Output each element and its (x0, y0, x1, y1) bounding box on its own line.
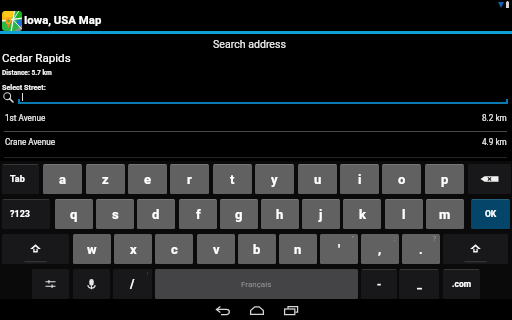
staticText: p (441, 172, 449, 187)
button[interactable]: _ (399, 269, 439, 299)
staticText: x (130, 242, 137, 257)
button[interactable]: Voice input (73, 269, 110, 299)
button[interactable]: a (43, 164, 82, 194)
button[interactable]: q (55, 199, 93, 229)
staticText: 4.9 km (482, 137, 507, 147)
button[interactable]: . (402, 234, 440, 264)
button[interactable]: x (114, 234, 152, 264)
staticText: v (213, 242, 220, 257)
staticText: n (294, 242, 302, 257)
button[interactable]: e (128, 164, 167, 194)
staticText: . (419, 242, 423, 257)
staticText: ' (338, 242, 341, 257)
staticText: Search address (213, 38, 286, 50)
staticText: Tab (10, 174, 25, 185)
button[interactable]: m (426, 199, 464, 229)
button[interactable]: Shift (443, 234, 508, 264)
staticText: Select Street: (2, 83, 46, 91)
staticText: / (130, 277, 135, 291)
button[interactable]: Home (240, 299, 274, 320)
button[interactable]: u (298, 164, 337, 194)
staticText: ?123 (10, 209, 30, 220)
button[interactable]: / (113, 269, 152, 299)
button[interactable]: Space (155, 269, 358, 299)
staticText: " (352, 235, 355, 243)
staticText: h (276, 207, 284, 222)
staticText: : (394, 235, 396, 243)
button[interactable]: n (279, 234, 317, 264)
staticText: .com (452, 279, 472, 289)
staticText: w (87, 242, 97, 257)
button[interactable]: Backspace (468, 164, 511, 194)
staticText: Français (241, 280, 272, 289)
staticText: a (59, 172, 66, 187)
button[interactable]: i (340, 164, 379, 194)
staticText: _ (417, 278, 422, 291)
button[interactable]: .com (443, 269, 480, 299)
staticText: t (230, 172, 235, 187)
staticText: Distance: 5.7 km (2, 69, 52, 77)
staticText: , (378, 242, 382, 257)
button[interactable]: OK (471, 199, 510, 229)
staticText: k (359, 207, 366, 222)
staticText: Crane Avenue (5, 137, 56, 147)
staticText: e (144, 172, 152, 187)
staticText: l (402, 207, 406, 222)
button[interactable]: z (86, 164, 125, 194)
staticText: g (235, 207, 243, 222)
button[interactable]: ?123 (2, 199, 50, 229)
staticText: - (377, 278, 382, 291)
button[interactable]: f (179, 199, 217, 229)
staticText: ? (433, 235, 437, 243)
button[interactable]: , (361, 234, 399, 264)
staticText: Iowa, USA Map (24, 13, 102, 26)
button[interactable]: Settings (32, 269, 69, 299)
button[interactable]: w (73, 234, 111, 264)
staticText: r (187, 172, 192, 187)
button[interactable]: g (220, 199, 258, 229)
staticText: 1st Avenue (5, 113, 46, 123)
button[interactable]: y (255, 164, 294, 194)
button[interactable]: 1st Avenue (0, 106, 512, 129)
staticText: b (253, 242, 261, 257)
button[interactable]: c (155, 234, 193, 264)
staticText: u (314, 172, 322, 187)
staticText: z (102, 172, 109, 187)
staticText: 8.2 km (482, 113, 507, 123)
button[interactable]: v (197, 234, 235, 264)
button[interactable]: j (302, 199, 340, 229)
button[interactable]: s (96, 199, 134, 229)
button[interactable]: Tab (2, 164, 39, 194)
staticText: : (147, 269, 149, 276)
staticText: c (171, 242, 178, 257)
staticText: s (112, 207, 119, 222)
button[interactable]: Shift (2, 234, 69, 264)
button[interactable]: Recent apps (274, 299, 308, 320)
staticText: d (152, 207, 160, 222)
staticText: i (358, 172, 362, 187)
button[interactable]: k (343, 199, 381, 229)
button[interactable]: l (385, 199, 423, 229)
button[interactable]: ' (320, 234, 358, 264)
button[interactable]: b (238, 234, 276, 264)
staticText: m (439, 207, 451, 222)
button[interactable]: d (137, 199, 175, 229)
button[interactable]: Back (206, 299, 240, 320)
button[interactable]: Crane Avenue (0, 130, 512, 153)
staticText: j (319, 207, 323, 222)
staticText: y (271, 172, 278, 187)
button[interactable]: o (382, 164, 421, 194)
staticText: Cedar Rapids (2, 51, 71, 65)
button[interactable]: p (425, 164, 464, 194)
staticText: OK (485, 209, 497, 219)
button[interactable]: h (261, 199, 299, 229)
staticText: o (398, 172, 406, 187)
button[interactable]: r (170, 164, 209, 194)
staticText: f (196, 207, 201, 222)
button[interactable]: t (213, 164, 252, 194)
staticText: q (70, 207, 78, 222)
button[interactable]: - (361, 269, 397, 299)
